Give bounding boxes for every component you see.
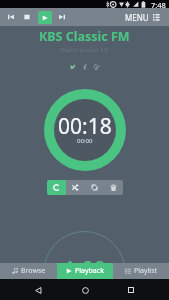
staticText: 00:18 [58,112,112,141]
staticText: Browse [21,266,46,276]
button[interactable]: Stop [19,9,34,25]
button[interactable]: Previous [3,9,19,25]
button[interactable]: Recents [122,281,140,299]
button[interactable]: Shuffle [66,180,85,195]
staticText: 1:00 [64,255,106,284]
staticText: MENU [125,12,149,23]
button[interactable]: Google Plus [92,62,101,71]
staticText: KBS Classic FM [39,28,130,45]
button[interactable]: Repeat [85,180,104,195]
button[interactable]: Home [76,281,94,299]
button[interactable]: Playback [57,263,113,279]
button[interactable]: Next [54,9,69,25]
button[interactable]: MENU [119,8,169,26]
staticText: Playlist [134,266,158,276]
staticText: 00:00 [77,137,93,145]
staticText: Playlist position 8/8 [61,46,109,53]
staticText: Playback [75,266,104,276]
button[interactable]: Back [29,281,47,299]
button[interactable]: Play [38,11,52,24]
button[interactable]: Delete [104,180,123,195]
button[interactable]: Facebook [80,62,89,71]
button[interactable]: Browse [0,263,57,279]
button[interactable]: Playlist [113,263,169,279]
button[interactable]: Repeat one [47,180,66,195]
staticText: 7:48 [151,0,166,8]
button[interactable]: Twitter [68,62,77,71]
